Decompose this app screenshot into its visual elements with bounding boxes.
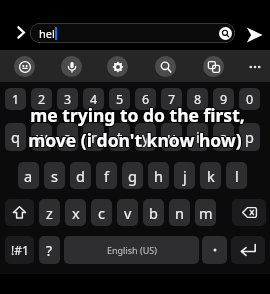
staticText: me trying to do the first,	[29, 102, 244, 126]
staticText: !#1	[11, 242, 29, 258]
button[interactable]: i	[187, 123, 208, 151]
button[interactable]: c	[91, 199, 112, 226]
button[interactable]: f	[96, 162, 117, 189]
button[interactable]: Stickers	[14, 56, 35, 77]
staticText: move (i don't know how)	[28, 127, 242, 151]
staticText: b	[149, 203, 158, 223]
staticText: 7	[168, 91, 176, 108]
button[interactable]: t	[109, 123, 130, 151]
staticText: z	[46, 203, 53, 223]
button[interactable]: 8	[187, 88, 208, 110]
staticText: a	[24, 166, 33, 186]
staticText: me trying to do the first,	[29, 103, 244, 127]
staticText: move (i don't know how)	[27, 129, 241, 153]
button[interactable]: Settings	[107, 56, 128, 77]
staticText: move (i don't know how)	[29, 128, 243, 152]
button[interactable]: y	[135, 123, 156, 151]
button[interactable]: u	[161, 123, 182, 151]
button[interactable]: Voice input	[61, 56, 82, 77]
staticText: u	[167, 127, 176, 147]
staticText: e	[63, 127, 72, 147]
button[interactable]: 7	[161, 88, 182, 110]
staticText: m	[199, 203, 213, 223]
button[interactable]: English (US)	[64, 236, 199, 264]
staticText: j	[183, 166, 187, 186]
button[interactable]: w	[31, 123, 52, 151]
button[interactable]: o	[213, 123, 234, 151]
staticText: 8	[194, 91, 202, 108]
staticText: l	[235, 166, 239, 186]
staticText: o	[219, 127, 228, 147]
staticText: r	[91, 127, 97, 147]
button[interactable]: More options	[244, 56, 265, 77]
staticText: k	[207, 166, 215, 186]
button[interactable]: 2	[31, 88, 52, 110]
button[interactable]: p	[239, 123, 260, 151]
button[interactable]: r	[83, 123, 104, 151]
staticText: English (US)	[107, 244, 157, 256]
button[interactable]: 4	[83, 88, 104, 110]
staticText: me trying to do the first,	[30, 102, 245, 126]
staticText: n	[175, 203, 184, 223]
button[interactable]: d	[70, 162, 91, 189]
button[interactable]: Send	[243, 24, 264, 45]
button[interactable]: Search	[219, 27, 232, 40]
button[interactable]: n	[169, 199, 190, 226]
staticText: d	[76, 166, 85, 186]
button[interactable]: 0	[239, 88, 260, 110]
staticText: i	[196, 127, 200, 147]
staticText: t	[117, 127, 123, 147]
staticText: move (i don't know how)	[29, 129, 243, 153]
staticText: 1	[12, 91, 20, 108]
staticText: me trying to do the first,	[31, 104, 246, 128]
button[interactable]: Search	[155, 56, 176, 77]
button[interactable]: 9	[213, 88, 234, 110]
button[interactable]: g	[122, 162, 143, 189]
button[interactable]: e	[57, 123, 78, 151]
staticText: w	[36, 127, 48, 147]
staticText: x	[72, 203, 80, 223]
button[interactable]: ?	[39, 236, 60, 264]
button[interactable]	[202, 236, 227, 264]
button[interactable]: l	[226, 162, 247, 189]
button[interactable]: Translate	[203, 56, 224, 77]
button[interactable]: 1	[5, 88, 26, 110]
staticText: hel	[39, 26, 55, 41]
staticText: 4	[90, 91, 98, 108]
button[interactable]: q	[5, 123, 26, 151]
button[interactable]: Backspace	[232, 199, 266, 226]
staticText: q	[11, 127, 20, 147]
staticText: move (i don't know how)	[27, 128, 241, 152]
button[interactable]: x	[65, 199, 86, 226]
button[interactable]: j	[174, 162, 195, 189]
staticText: move (i don't know how)	[28, 128, 242, 152]
staticText: move (i don't know how)	[28, 129, 242, 153]
button[interactable]: k	[200, 162, 221, 189]
staticText: s	[51, 166, 58, 186]
button[interactable]: Expand toolbar	[10, 22, 30, 42]
button[interactable]: v	[117, 199, 138, 226]
button[interactable]: 5	[109, 88, 130, 110]
staticText: c	[98, 203, 105, 223]
button[interactable]: b	[143, 199, 164, 226]
staticText: me trying to do the first,	[31, 103, 246, 127]
button[interactable]: Symbols	[5, 236, 34, 264]
button[interactable]: m	[195, 199, 216, 226]
button[interactable]: a	[18, 162, 39, 189]
button[interactable]: 3	[57, 88, 78, 110]
button[interactable]: s	[44, 162, 65, 189]
staticText: 6	[142, 91, 150, 108]
button[interactable]: hel	[30, 23, 235, 43]
button[interactable]: 6	[135, 88, 156, 110]
button[interactable]: h	[148, 162, 169, 189]
staticText: ?	[46, 241, 53, 260]
staticText: me trying to do the first,	[30, 103, 245, 127]
staticText: me trying to do the first,	[29, 104, 244, 128]
button[interactable]: z	[39, 199, 60, 226]
staticText: h	[154, 166, 163, 186]
staticText: move (i don't know how)	[27, 127, 241, 151]
staticText: me trying to do the first,	[31, 102, 246, 126]
staticText: 0	[246, 91, 254, 108]
button[interactable]: Enter	[231, 236, 265, 264]
button[interactable]: Shift	[5, 199, 34, 226]
